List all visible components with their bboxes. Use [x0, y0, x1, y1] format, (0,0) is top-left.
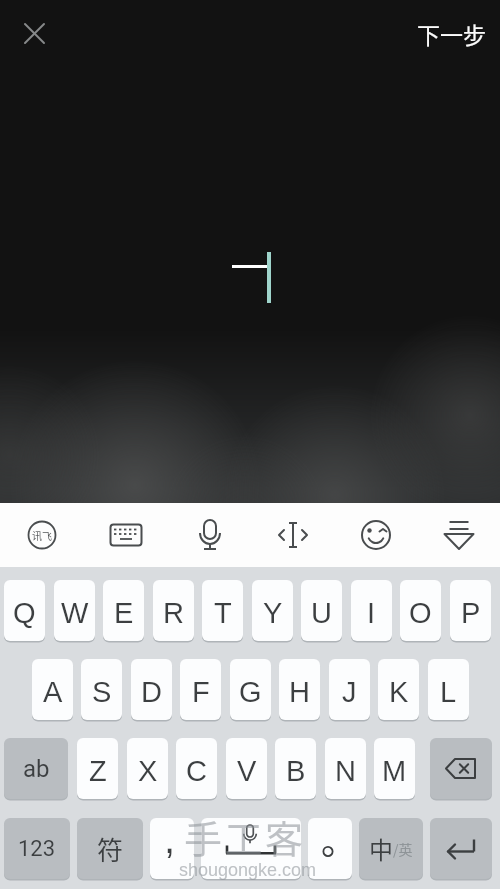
staticText: S — [92, 676, 112, 708]
staticText: Z — [89, 755, 107, 787]
button[interactable] — [334, 503, 417, 567]
staticText: O — [409, 597, 432, 629]
button[interactable]: I — [351, 580, 392, 641]
button[interactable] — [417, 503, 500, 567]
button[interactable] — [430, 738, 492, 799]
button[interactable]: T — [202, 580, 243, 641]
button[interactable]: R — [153, 580, 194, 641]
staticText: 讯飞 — [32, 528, 52, 542]
button[interactable]: B — [275, 738, 316, 799]
staticText: K — [389, 676, 409, 708]
button[interactable]: F — [180, 659, 221, 720]
button[interactable]: , — [150, 818, 194, 879]
button[interactable]: W — [54, 580, 95, 641]
button[interactable]: 中 — [359, 818, 423, 879]
button[interactable] — [12, 11, 56, 55]
staticText: B — [286, 755, 306, 787]
button[interactable]: E — [103, 580, 144, 641]
staticText: D — [141, 676, 162, 708]
button[interactable]: Q — [4, 580, 45, 641]
staticText: H — [289, 676, 310, 708]
staticText: T — [214, 597, 232, 629]
staticText: J — [342, 676, 357, 708]
button[interactable] — [251, 503, 334, 567]
button[interactable]: P — [450, 580, 491, 641]
button[interactable]: M — [374, 738, 415, 799]
button[interactable]: C — [176, 738, 217, 799]
staticText: L — [440, 676, 457, 708]
button[interactable]: L — [428, 659, 469, 720]
staticText: 符 — [97, 830, 124, 868]
staticText: U — [311, 597, 332, 629]
staticText: M — [382, 755, 407, 787]
button[interactable]: A — [32, 659, 73, 720]
button[interactable]: 123 — [4, 818, 70, 879]
staticText: F — [192, 676, 210, 708]
staticText: Q — [13, 597, 36, 629]
button[interactable]: ab — [4, 738, 68, 799]
staticText: ab — [23, 755, 50, 783]
button[interactable] — [84, 503, 168, 567]
staticText: Y — [263, 597, 283, 629]
staticText: 下一步 — [417, 17, 486, 50]
button[interactable] — [201, 818, 301, 879]
button[interactable] — [168, 503, 251, 567]
staticText: C — [186, 755, 207, 787]
button[interactable]: X — [127, 738, 168, 799]
button[interactable]: Z — [77, 738, 118, 799]
staticText: , — [164, 817, 176, 862]
staticText: E — [114, 597, 134, 629]
staticText: X — [138, 755, 158, 787]
button[interactable] — [308, 818, 352, 879]
button[interactable]: S — [81, 659, 122, 720]
staticText: P — [461, 597, 481, 629]
staticText: W — [61, 597, 89, 629]
button[interactable]: N — [325, 738, 366, 799]
button[interactable]: K — [378, 659, 419, 720]
staticText: G — [239, 676, 262, 708]
staticText: A — [43, 676, 63, 708]
staticText: I — [367, 597, 376, 629]
button[interactable]: 下一步 — [417, 17, 500, 50]
staticText: 手工客 — [184, 809, 306, 864]
button[interactable]: V — [226, 738, 267, 799]
staticText: N — [335, 755, 356, 787]
button[interactable]: D — [131, 659, 172, 720]
staticText: /英 — [393, 839, 413, 859]
button[interactable]: J — [329, 659, 370, 720]
staticText: V — [237, 755, 257, 787]
button[interactable]: Y — [252, 580, 293, 641]
button[interactable]: H — [279, 659, 320, 720]
button[interactable]: O — [400, 580, 441, 641]
staticText: shougongke.com — [179, 860, 317, 880]
button[interactable]: 讯飞 — [0, 503, 84, 567]
staticText: 中 — [369, 831, 393, 866]
button[interactable]: 符 — [77, 818, 143, 879]
staticText: R — [163, 597, 184, 629]
button[interactable]: G — [230, 659, 271, 720]
button[interactable]: U — [301, 580, 342, 641]
button[interactable] — [430, 818, 492, 879]
staticText: 123 — [18, 836, 56, 862]
